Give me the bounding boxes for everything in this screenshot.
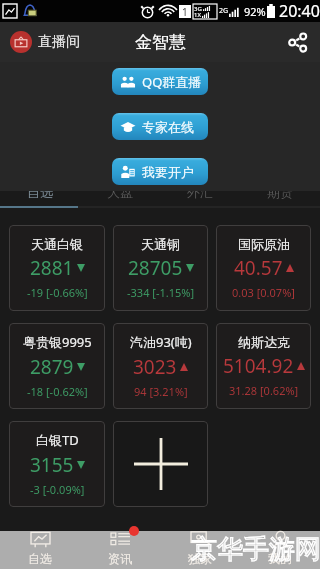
staticText: 2879 (30, 354, 74, 380)
staticText: -3 [-0.09%] (30, 482, 85, 497)
button[interactable]: 天通铜 (113, 225, 208, 311)
button[interactable]: 大盘 (80, 191, 160, 206)
staticText: 我的 (268, 551, 292, 566)
staticText: 期货 (267, 191, 293, 199)
staticText: 3023 (133, 354, 177, 380)
staticText: -19 [-0.66%] (27, 285, 88, 300)
staticText: 5104.92 (223, 353, 294, 379)
staticText: 1 (182, 5, 188, 18)
button[interactable]: 粤贵银9995 (9, 323, 105, 409)
staticText: 直播间 (38, 33, 80, 51)
staticText: 汽油93(吨) (130, 333, 192, 351)
staticText: 京华手游网 (191, 533, 320, 566)
staticText: 白银TD (36, 431, 79, 449)
staticText: 天通白银 (31, 236, 83, 252)
button[interactable]: Add stock (113, 421, 208, 507)
button[interactable]: 自选 (0, 531, 80, 569)
button[interactable]: 期货 (240, 191, 320, 206)
button[interactable]: 自选 (0, 191, 80, 206)
staticText: 我要开户 (142, 164, 194, 180)
staticText: 0.03 [0.07%] (232, 285, 295, 300)
button[interactable]: 我要开户 (112, 158, 208, 185)
staticText: QQ群直播 (142, 73, 202, 91)
staticText: 92% (244, 4, 266, 19)
staticText: 国际原油 (238, 236, 290, 252)
button[interactable]: 国际原油 (216, 225, 311, 311)
staticText: 粤贵银9995 (23, 333, 92, 351)
staticText: 独家 (188, 551, 212, 566)
staticText: 31.28 [0.62%] (229, 383, 299, 398)
button[interactable]: 我的 (240, 531, 320, 569)
button[interactable]: 专家在线 (112, 113, 208, 140)
staticText: 3G (194, 5, 202, 11)
staticText: 自选 (27, 191, 53, 199)
staticText: 3155 (30, 452, 74, 478)
staticText: -18 [-0.62%] (27, 384, 88, 399)
staticText: 自选 (28, 551, 52, 566)
staticText: 2G (219, 6, 229, 16)
staticText: 专家在线 (142, 119, 194, 135)
button[interactable]: 直播间 (10, 31, 80, 53)
staticText: 资讯 (108, 551, 132, 566)
button[interactable]: 汽油93(吨) (113, 323, 208, 409)
button[interactable]: 外汇 (160, 191, 240, 206)
staticText: 1X (194, 11, 201, 18)
staticText: 28705 (128, 255, 183, 281)
staticText: 20:40 (279, 0, 320, 22)
staticText: 金智慧 (135, 32, 186, 53)
staticText: 大盘 (107, 191, 133, 199)
staticText: -334 [-1.15%] (127, 285, 195, 300)
staticText: 94 [3.21%] (134, 384, 188, 399)
button[interactable]: 独家 (160, 531, 240, 569)
staticText: 纳斯达克 (238, 334, 290, 350)
staticText: 2881 (30, 255, 74, 281)
button[interactable]: 资讯 (80, 531, 160, 569)
button[interactable]: 纳斯达克 (216, 323, 311, 409)
button[interactable]: 天通白银 (9, 225, 105, 311)
staticText: 天通铜 (141, 236, 180, 252)
staticText: 40.57 (234, 255, 283, 281)
button[interactable]: Share (280, 25, 314, 59)
staticText: 外汇 (187, 191, 213, 199)
button[interactable]: 白银TD (9, 421, 105, 507)
button[interactable]: QQ群直播 (112, 68, 208, 95)
